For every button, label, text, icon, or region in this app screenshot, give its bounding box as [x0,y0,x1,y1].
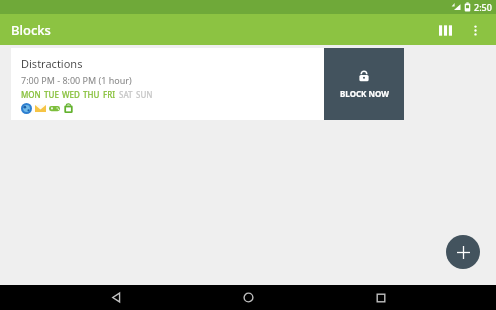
staticText: THU [83,89,100,100]
button[interactable]: View mode [430,15,460,45]
staticText: Distractions [21,56,83,71]
staticText: WED [62,89,80,100]
button[interactable]: Back [99,285,133,310]
staticText: Blocks [11,21,51,39]
staticText: SAT [119,89,133,100]
staticText: 2:50 [474,1,492,13]
staticText: BLOCK NOW [340,88,389,99]
staticText: 7:00 PM - 8:00 PM (1 hour) [21,74,132,86]
button[interactable]: Add block [446,235,480,269]
button[interactable]: Distractions [11,48,404,120]
button[interactable]: Home [231,285,265,310]
button[interactable]: Recent apps [364,285,398,310]
staticText: TUE [44,89,59,100]
staticText: MON [21,89,41,100]
staticText: FRI [103,89,116,100]
staticText: SUN [136,89,153,100]
button[interactable]: BLOCK NOW [324,48,404,120]
button[interactable]: More options [460,15,490,45]
